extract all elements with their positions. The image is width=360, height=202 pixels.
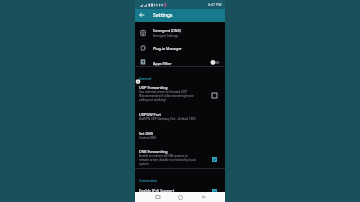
staticText: Enable IPv6 Support (139, 188, 175, 193)
staticText: Connection (139, 178, 157, 182)
staticText: Use external server to forward UDP (Reco… (139, 90, 194, 102)
button[interactable] (135, 55, 225, 69)
button[interactable] (135, 26, 225, 42)
staticText: UDPGW Port (139, 112, 161, 117)
button[interactable]: Home (173, 192, 187, 202)
staticText: Enable to redirect all DNS queries to re… (139, 154, 196, 166)
button[interactable] (135, 82, 225, 104)
staticText: Emergent (DNS) (153, 28, 181, 33)
staticText: 6:47 PM (208, 2, 222, 7)
button[interactable] (135, 186, 225, 196)
staticText: Apps Filter (153, 61, 172, 66)
staticText: DNS Forwarding (139, 149, 168, 154)
staticText: Settings (153, 12, 173, 19)
staticText: Custom DNS (139, 136, 157, 140)
staticText: BadVPN UDP Gateway Port - Default 7300 (139, 117, 196, 121)
button[interactable]: Disabled (211, 92, 217, 98)
staticText: UDP Forwarding (139, 85, 168, 90)
staticText: General (139, 76, 152, 80)
button[interactable] (135, 127, 225, 144)
staticText: Set DNS (139, 131, 153, 136)
button[interactable] (135, 42, 225, 55)
staticText: Emergent Settings (153, 34, 179, 38)
button[interactable] (135, 108, 225, 125)
button[interactable]: Apps Filter toggle (209, 58, 222, 67)
staticText: Plug-in Manager (153, 46, 182, 51)
button[interactable] (135, 146, 225, 170)
button[interactable]: Enabled (211, 156, 217, 162)
button[interactable]: Back (197, 192, 211, 202)
button[interactable]: Recents (151, 192, 165, 202)
button[interactable]: Enabled (211, 188, 217, 194)
button[interactable]: Back (135, 9, 148, 21)
